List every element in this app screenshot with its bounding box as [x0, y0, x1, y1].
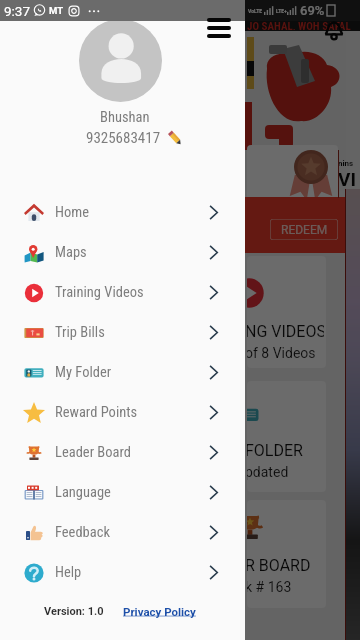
button[interactable]: My Folder: [0, 352, 245, 392]
staticText: of 8 Videos: [247, 345, 316, 361]
staticText: 9:37: [4, 3, 31, 19]
staticText: My Folder: [55, 364, 112, 381]
button[interactable]: Trip Bills: [0, 312, 245, 352]
button[interactable]: Help: [0, 552, 245, 592]
staticText: 69%: [300, 3, 325, 18]
staticText: Training Videos: [55, 284, 144, 301]
staticText: FOLDER: [247, 441, 303, 460]
button[interactable]: Profile photo: [79, 19, 162, 102]
staticText: Trip Bills: [55, 324, 105, 341]
staticText: VoLTE: [248, 8, 263, 14]
staticText: pdated: [247, 464, 289, 480]
button[interactable]: Home: [0, 192, 245, 232]
staticText: Help: [55, 564, 82, 581]
staticText: k # 163: [247, 579, 292, 595]
staticText: R BOARD: [247, 556, 311, 575]
button[interactable]: Reward Points: [0, 392, 245, 432]
staticText: Language: [55, 484, 111, 501]
staticText: REDEEM: [281, 223, 328, 237]
staticText: 9325683417: [86, 129, 161, 147]
button[interactable]: R BOARD: [247, 500, 326, 608]
staticText: LTE+: [276, 8, 287, 14]
staticText: JO SAHAL, WOH SAFAL: [247, 20, 351, 30]
staticText: Privacy Policy: [123, 605, 199, 618]
staticText: Feedback: [55, 524, 110, 541]
staticText: Version: 1.0: [44, 605, 104, 618]
button[interactable]: Feedback: [0, 512, 245, 552]
staticText: Home: [55, 204, 89, 221]
button[interactable]: Privacy Policy: [123, 605, 199, 618]
button[interactable]: Edit profile: [165, 128, 185, 148]
button[interactable]: Leader Board: [0, 432, 245, 472]
button[interactable]: Notifications: [322, 19, 346, 43]
staticText: Maps: [55, 244, 87, 261]
button[interactable]: REDEEM: [270, 219, 338, 240]
button[interactable]: NG VIDEOS: [247, 256, 326, 368]
button[interactable]: Language: [0, 472, 245, 512]
staticText: VI: [338, 168, 356, 190]
staticText: MT: [49, 5, 64, 16]
staticText: Leader Board: [55, 444, 131, 461]
button[interactable]: FOLDER: [247, 381, 326, 492]
staticText: Reward Points: [55, 404, 138, 421]
button[interactable]: Open navigation menu: [199, 8, 239, 48]
button[interactable]: Maps: [0, 232, 245, 272]
staticText: Bhushan: [100, 109, 150, 126]
staticText: nins: [338, 159, 354, 168]
staticText: NG VIDEOS: [247, 322, 324, 341]
button[interactable]: Training Videos: [0, 272, 245, 312]
